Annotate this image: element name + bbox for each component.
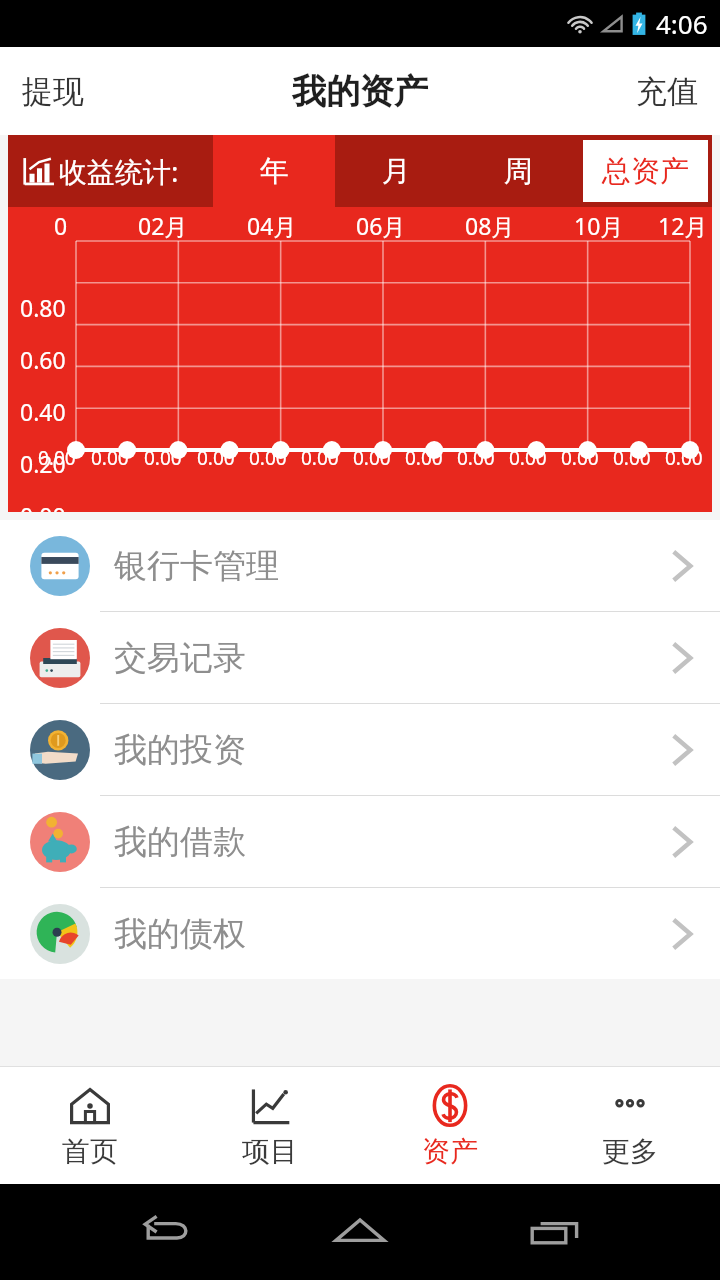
button[interactable]: 我的借款 (0, 796, 720, 888)
staticText: 0 (54, 210, 68, 241)
staticText: 0.00 (665, 445, 703, 471)
staticText: 年 (260, 153, 289, 190)
other: Back (135, 1202, 195, 1262)
staticText: 0.60 (20, 344, 66, 375)
button[interactable]: 提现 (0, 47, 106, 135)
staticText: 04月 (247, 210, 297, 241)
button[interactable]: 资产 (360, 1067, 540, 1184)
button[interactable]: 更多 (540, 1067, 720, 1184)
staticText: 0.00 (20, 500, 66, 531)
staticText: 10月 (574, 210, 624, 241)
staticText: 4:06 (656, 6, 708, 41)
staticText: 总资产 (602, 153, 689, 190)
staticText: 0.00 (301, 445, 339, 471)
button[interactable]: 我的债权 (0, 888, 720, 979)
staticText: 我的债权 (114, 913, 246, 955)
staticText: 0.00 (561, 445, 599, 471)
staticText: 0.00 (613, 445, 651, 471)
staticText: 我的投资 (114, 729, 246, 771)
button[interactable]: 充值 (614, 47, 720, 135)
button[interactable]: 年 (213, 135, 335, 207)
staticText: 周 (504, 153, 533, 190)
staticText: 0.00 (38, 445, 76, 471)
staticText: 0.00 (91, 445, 129, 471)
staticText: 12月 (658, 210, 708, 241)
staticText: 银行卡管理 (114, 545, 279, 587)
staticText: 交易记录 (114, 637, 246, 679)
staticText: 02月 (138, 210, 188, 241)
button[interactable]: 月 (335, 135, 457, 207)
button[interactable]: 收益统计: (8, 135, 213, 207)
staticText: 我的借款 (114, 821, 246, 863)
staticText: 0.00 (405, 445, 443, 471)
other: Recent apps (525, 1202, 585, 1262)
staticText: 首页 (62, 1134, 118, 1169)
button[interactable]: 项目 (180, 1067, 360, 1184)
staticText: 0.00 (144, 445, 182, 471)
staticText: 0.00 (509, 445, 547, 471)
button[interactable]: 周 (457, 135, 579, 207)
other: Home (330, 1202, 390, 1262)
button[interactable]: 交易记录 (0, 612, 720, 704)
staticText: 0.00 (197, 445, 235, 471)
staticText: 0.00 (353, 445, 391, 471)
staticText: 0.00 (249, 445, 287, 471)
staticText: 06月 (356, 210, 406, 241)
staticText: 08月 (465, 210, 515, 241)
staticText: 0.80 (20, 292, 66, 323)
staticText: 收益统计: (59, 152, 179, 190)
staticText: 0.20 (20, 448, 66, 479)
button[interactable]: 首页 (0, 1067, 180, 1184)
staticText: 月 (382, 153, 411, 190)
button[interactable]: 我的投资 (0, 704, 720, 796)
button[interactable]: 总资产 (579, 135, 712, 207)
staticText: 我的资产 (292, 70, 428, 113)
staticText: 充值 (636, 72, 698, 111)
staticText: 资产 (422, 1134, 478, 1169)
button[interactable]: 银行卡管理 (0, 520, 720, 612)
staticText: 0.40 (20, 396, 66, 427)
staticText: 项目 (242, 1134, 298, 1169)
staticText: 0.00 (457, 445, 495, 471)
staticText: 更多 (602, 1134, 658, 1169)
staticText: 提现 (22, 72, 84, 111)
